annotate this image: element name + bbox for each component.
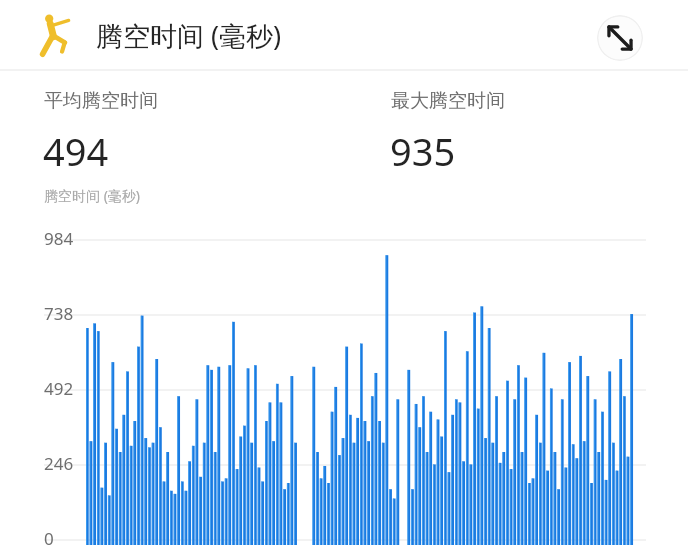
staticText: 984 xyxy=(44,227,74,250)
staticText: 492 xyxy=(44,377,74,400)
staticText: 0 xyxy=(44,527,54,548)
staticText: 935 xyxy=(390,125,456,177)
staticText: 494 xyxy=(43,125,109,177)
staticText: 平均腾空时间 xyxy=(44,89,158,113)
staticText: 738 xyxy=(44,302,74,325)
staticText: 腾空时间 (毫秒) xyxy=(96,17,282,54)
staticText: 腾空时间 (毫秒) xyxy=(44,186,141,205)
staticText: 最大腾空时间 xyxy=(391,89,505,113)
button[interactable]: Expand chart xyxy=(597,15,643,61)
staticText: 246 xyxy=(44,452,74,475)
